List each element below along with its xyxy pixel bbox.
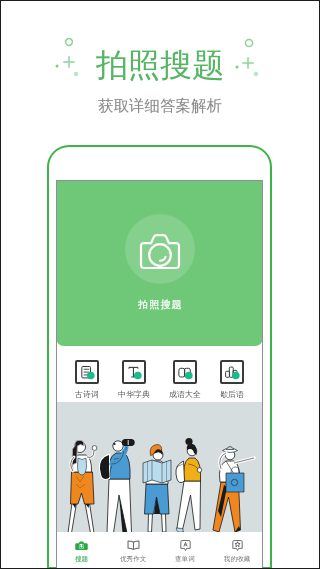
button[interactable]: 我的收藏 <box>211 532 263 569</box>
button[interactable]: 古诗词 <box>75 360 99 399</box>
button[interactable]: 查单词 <box>159 532 211 569</box>
staticText: 古诗词 <box>75 389 99 399</box>
staticText: 搜题 <box>75 555 89 563</box>
button[interactable]: 歇后语 <box>220 360 244 399</box>
staticText: 获取详细答案解析 <box>98 96 222 116</box>
button[interactable]: 成语大全 <box>169 360 201 399</box>
staticText: 成语大全 <box>169 389 201 399</box>
staticText: 查单词 <box>175 555 195 563</box>
button[interactable]: 拍照搜题 <box>125 214 195 284</box>
staticText: 我的收藏 <box>224 555 251 563</box>
staticText: 优秀作文 <box>120 555 147 563</box>
staticText: 歇后语 <box>220 389 244 399</box>
button[interactable]: 中华字典 <box>118 360 150 399</box>
button[interactable]: 优秀作文 <box>107 532 159 569</box>
staticText: 拍照搜题 <box>138 298 183 311</box>
staticText: 拍照搜题 <box>96 45 224 85</box>
button[interactable]: 搜题 <box>56 532 107 569</box>
staticText: 中华字典 <box>118 389 150 399</box>
